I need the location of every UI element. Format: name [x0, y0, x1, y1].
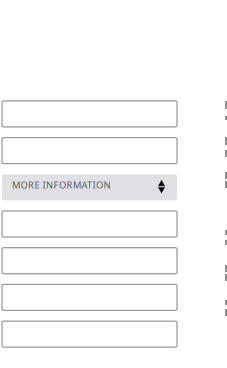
button[interactable]: Field 5	[2, 284, 177, 310]
button[interactable]: MORE INFORMATION	[2, 174, 177, 200]
staticText: MORE INFORMATION	[12, 179, 110, 191]
button[interactable]: Field 3	[2, 211, 177, 237]
button[interactable]: Field 1	[2, 101, 177, 127]
button[interactable]: Field 4	[2, 248, 177, 274]
button[interactable]: Field 2	[2, 138, 177, 164]
button[interactable]: Field 6	[2, 321, 177, 347]
